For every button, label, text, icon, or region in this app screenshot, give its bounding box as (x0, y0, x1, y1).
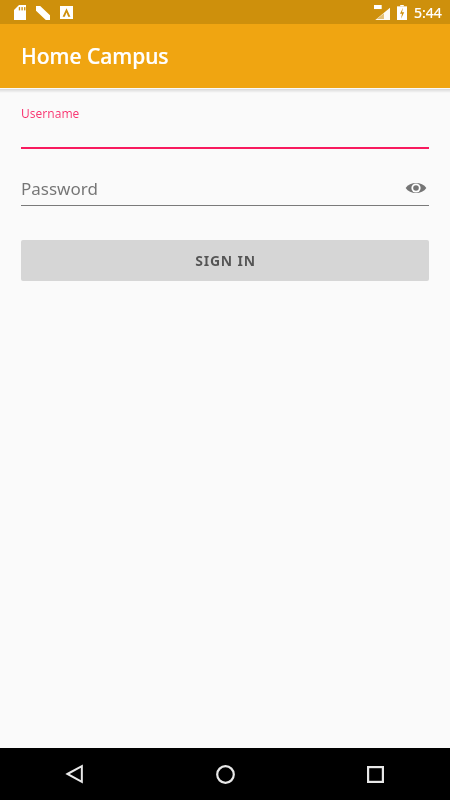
staticText: 5:44 (414, 3, 442, 22)
staticText: Username (21, 105, 80, 121)
button[interactable]: Password (21, 175, 429, 206)
button[interactable]: Show password (403, 175, 429, 201)
button[interactable]: SIGN IN (21, 240, 429, 281)
staticText: Home Campus (21, 42, 169, 71)
button[interactable]: Home (150, 748, 300, 800)
staticText: Password (21, 177, 403, 200)
staticText: SIGN IN (195, 251, 256, 270)
button[interactable]: Back (0, 748, 150, 800)
button[interactable]: Username (21, 105, 429, 149)
button[interactable]: Recent apps (300, 748, 450, 800)
